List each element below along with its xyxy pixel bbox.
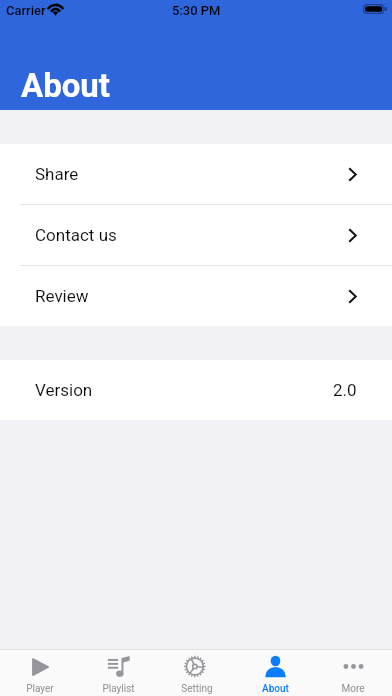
button[interactable]: Review [0,266,392,326]
staticText: Player [26,683,54,695]
button[interactable]: Playlist [79,650,158,695]
staticText: Contact us [35,225,117,245]
button[interactable]: Setting [158,650,236,695]
button[interactable]: More [314,650,392,695]
staticText: Playlist [102,683,135,695]
staticText: Review [35,286,89,306]
button[interactable]: Player [0,650,79,695]
staticText: About [262,683,289,695]
staticText: Version [35,380,93,400]
staticText: About [21,66,111,105]
button[interactable]: Version [0,360,392,420]
button[interactable]: Share [0,144,392,204]
button[interactable]: About [236,650,314,695]
staticText: Setting [181,683,213,695]
staticText: Carrier [6,3,46,18]
button[interactable]: Contact us [0,205,392,265]
staticText: More [341,683,365,695]
staticText: Share [35,164,79,184]
staticText: 2.0 [333,380,357,400]
staticText: 5:30 PM [172,3,221,18]
